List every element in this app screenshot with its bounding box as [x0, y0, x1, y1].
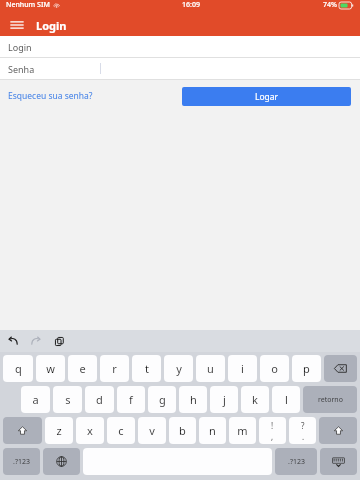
button[interactable]: k	[241, 386, 269, 413]
staticText: c	[118, 423, 124, 438]
button[interactable]: .?123	[3, 448, 40, 475]
staticText: Login	[36, 18, 67, 33]
staticText: .?123	[288, 457, 305, 467]
button[interactable]: d	[85, 386, 114, 413]
staticText: ,	[271, 431, 274, 442]
button[interactable]: Shift	[3, 417, 42, 444]
button[interactable]: Esqueceu sua senha?	[8, 90, 93, 102]
staticText: Senha	[8, 63, 35, 75]
staticText: x	[87, 423, 93, 438]
button[interactable]: o	[260, 355, 289, 382]
staticText: n	[209, 423, 216, 438]
staticText: d	[96, 392, 103, 407]
staticText: g	[159, 392, 166, 407]
staticText: z	[56, 423, 62, 438]
staticText: a	[32, 392, 39, 407]
button[interactable]: u	[196, 355, 225, 382]
staticText: o	[271, 361, 278, 376]
button[interactable]: b	[169, 417, 196, 444]
button[interactable]: Senha	[0, 58, 360, 79]
staticText: m	[237, 423, 248, 438]
button[interactable]: r	[100, 355, 129, 382]
staticText: q	[15, 361, 22, 376]
button[interactable]: j	[210, 386, 238, 413]
staticText: Logar	[255, 91, 279, 103]
button[interactable]: q	[3, 355, 33, 382]
button[interactable]: Login	[0, 36, 360, 57]
button[interactable]: e	[68, 355, 97, 382]
button[interactable]: t	[132, 355, 161, 382]
staticText: h	[190, 392, 197, 407]
staticText: Nenhum SIM	[6, 0, 50, 10]
button[interactable]: !	[259, 417, 286, 444]
button[interactable]: m	[229, 417, 256, 444]
staticText: .	[302, 431, 305, 442]
staticText: u	[207, 361, 214, 376]
button[interactable]: Backspace	[324, 355, 357, 382]
staticText: b	[179, 423, 186, 438]
button[interactable]: i	[228, 355, 257, 382]
staticText: k	[252, 392, 258, 407]
staticText: .?123	[13, 457, 30, 467]
staticText: r	[112, 361, 117, 376]
button[interactable]: n	[199, 417, 226, 444]
staticText: p	[303, 361, 310, 376]
button[interactable]: f	[117, 386, 145, 413]
staticText: !	[271, 420, 274, 431]
staticText: w	[46, 361, 55, 376]
button[interactable]: l	[272, 386, 300, 413]
staticText: f	[129, 392, 133, 407]
button[interactable]: Open navigation menu	[8, 16, 26, 34]
staticText: Esqueceu sua senha?	[8, 90, 93, 102]
button[interactable]: Paste	[51, 333, 67, 349]
button[interactable]: retorno	[303, 386, 357, 413]
button[interactable]: Logar	[182, 87, 351, 106]
button[interactable]: .?123	[275, 448, 317, 475]
button[interactable]: z	[45, 417, 73, 444]
staticText: 74%	[323, 0, 337, 10]
button[interactable]: Hide keyboard	[320, 448, 357, 475]
button[interactable]: c	[107, 417, 135, 444]
staticText: Login	[8, 41, 32, 53]
button[interactable]: y	[164, 355, 193, 382]
button[interactable]: a	[21, 386, 50, 413]
button[interactable]: Shift	[319, 417, 357, 444]
button[interactable]: x	[76, 417, 104, 444]
staticText: t	[145, 361, 149, 376]
button[interactable]: w	[36, 355, 65, 382]
button[interactable]: v	[138, 417, 166, 444]
button[interactable]: p	[292, 355, 321, 382]
staticText: j	[223, 392, 226, 407]
button[interactable]: Change keyboard language	[43, 448, 80, 475]
staticText: v	[149, 423, 155, 438]
staticText: y	[176, 361, 182, 376]
button[interactable]: g	[148, 386, 176, 413]
button[interactable]: h	[179, 386, 207, 413]
staticText: s	[65, 392, 71, 407]
button[interactable]: Redo	[28, 333, 44, 349]
staticText: retorno	[318, 395, 343, 405]
staticText: i	[241, 361, 244, 376]
button[interactable]: ?	[289, 417, 316, 444]
staticText: l	[285, 392, 288, 407]
staticText: 16:09	[182, 0, 200, 10]
button[interactable]: s	[53, 386, 82, 413]
button[interactable]: Undo	[5, 333, 21, 349]
staticText: e	[79, 361, 86, 376]
staticText: ?	[301, 420, 305, 431]
